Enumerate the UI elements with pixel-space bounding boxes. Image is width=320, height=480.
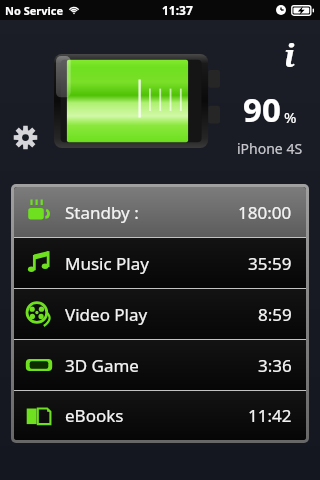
button[interactable]: Info xyxy=(271,34,307,70)
staticText: 3:36 xyxy=(258,354,292,377)
staticText: 11:37 xyxy=(162,2,193,18)
button[interactable]: Music Play xyxy=(14,238,306,288)
staticText: Video Play xyxy=(65,303,148,326)
button[interactable]: eBooks xyxy=(14,391,306,440)
staticText: No Service xyxy=(5,3,64,18)
staticText: i xyxy=(284,34,295,70)
staticText: Music Play xyxy=(65,252,149,275)
button[interactable]: Settings xyxy=(13,125,38,150)
staticText: 11:42 xyxy=(248,404,292,427)
staticText: 35:59 xyxy=(248,252,292,275)
staticText: 8:59 xyxy=(258,303,292,326)
staticText: 180:00 xyxy=(238,201,292,224)
staticText: 90 xyxy=(243,87,281,132)
button[interactable]: Video Play xyxy=(14,289,306,339)
button[interactable]: Standby : xyxy=(14,187,306,237)
button[interactable]: 3D Game xyxy=(14,340,306,390)
staticText: eBooks xyxy=(65,404,124,427)
staticText: Standby : xyxy=(65,201,139,224)
staticText: % xyxy=(284,107,297,127)
staticText: 3D Game xyxy=(65,354,139,377)
staticText: iPhone 4S xyxy=(237,139,303,158)
